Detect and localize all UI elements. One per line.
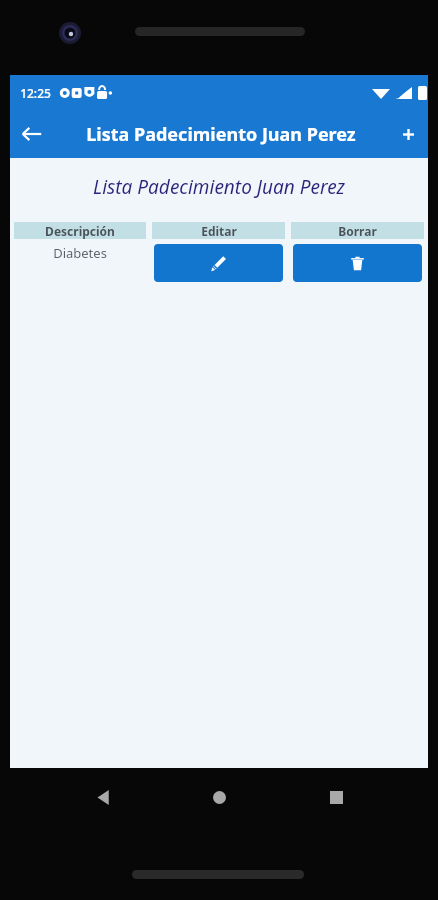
staticText: Descripción [45, 223, 115, 239]
button[interactable]: Add [388, 114, 428, 154]
staticText: 12:25 [20, 85, 51, 101]
button[interactable]: Recent apps [312, 773, 360, 821]
button[interactable]: Editar [154, 244, 283, 282]
button[interactable]: Back [79, 773, 127, 821]
staticText: Diabetes [53, 244, 107, 262]
staticText: Borrar [338, 223, 377, 239]
button[interactable]: Borrar [293, 244, 422, 282]
button[interactable]: Back [10, 112, 54, 156]
staticText: Lista Padecimiento Juan Perez [86, 122, 356, 147]
staticText: Lista Padecimiento Juan Perez [93, 174, 345, 200]
staticText: Editar [201, 223, 237, 239]
button[interactable]: Home [195, 773, 243, 821]
